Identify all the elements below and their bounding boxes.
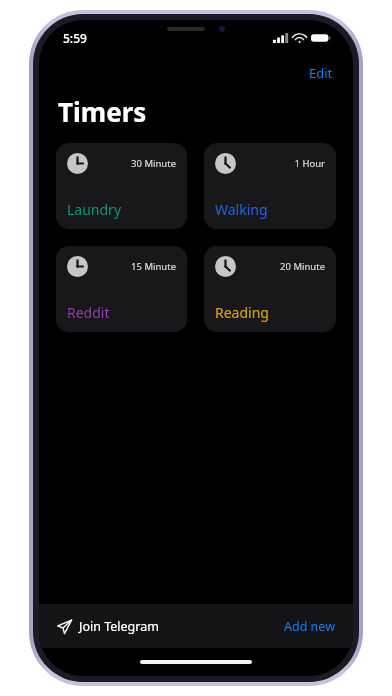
button[interactable]: 15 Minute — [56, 246, 187, 332]
staticText: 15 Minute — [131, 260, 176, 273]
button[interactable]: Edit — [299, 60, 343, 86]
staticText: Laundry — [67, 200, 122, 219]
staticText: Edit — [309, 64, 333, 82]
staticText: Add new — [284, 618, 335, 635]
button[interactable]: 30 Minute — [56, 143, 187, 229]
staticText: Join Telegram — [79, 618, 159, 635]
staticText: Walking — [215, 200, 268, 219]
button[interactable]: 20 Minute — [204, 246, 336, 332]
staticText: 5:59 — [63, 30, 87, 46]
staticText: 20 Minute — [280, 260, 325, 273]
button[interactable]: Add new — [276, 612, 343, 641]
staticText: 30 Minute — [131, 157, 176, 170]
staticText: Timers — [58, 94, 147, 129]
button[interactable]: 1 Hour — [204, 143, 336, 229]
other: Join Telegram — [57, 619, 72, 634]
staticText: Reading — [215, 303, 269, 322]
staticText: 1 Hour — [294, 157, 325, 170]
button[interactable]: Join Telegram — [49, 612, 167, 641]
staticText: Reddit — [67, 303, 110, 322]
